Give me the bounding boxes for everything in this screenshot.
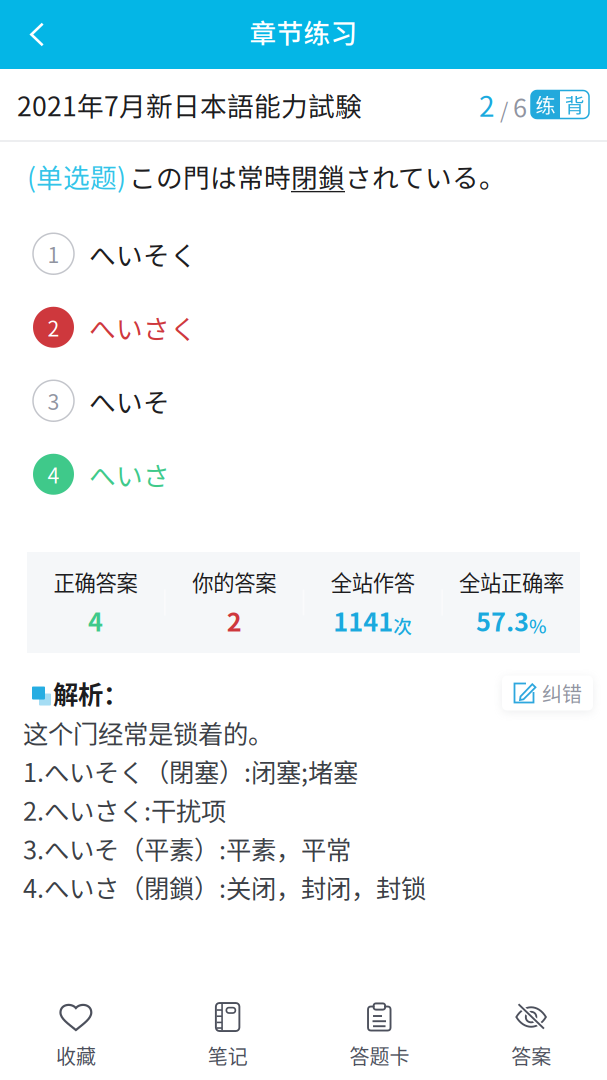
button[interactable]: 2	[0, 290, 607, 364]
staticText: 1.へいそく（閉塞）:闭塞;堵塞	[23, 753, 358, 789]
staticText: 章节练习	[249, 12, 357, 51]
staticText: 收藏	[56, 1041, 96, 1070]
staticText: 答题卡	[349, 1041, 409, 1070]
button[interactable]: 答案	[455, 1000, 607, 1070]
staticText: 2	[479, 84, 495, 125]
staticText: 閉鎖	[291, 157, 345, 195]
staticText: 次	[393, 612, 412, 639]
staticText: 答案	[511, 1041, 551, 1070]
staticText: 2	[227, 602, 242, 639]
staticText: 4.へいさ（閉鎖）:关闭，封闭，封锁	[23, 869, 426, 905]
staticText: 4	[47, 459, 59, 490]
staticText: へいそ	[89, 381, 170, 420]
staticText: 2	[47, 312, 59, 343]
staticText: 解析：	[53, 675, 128, 711]
staticText: 2021年7月新日本語能力試験	[17, 85, 362, 124]
button[interactable]: 笔记	[152, 1000, 304, 1070]
button[interactable]: 4	[0, 437, 607, 511]
staticText: 全站正确率	[459, 566, 564, 597]
staticText: 57.3	[476, 602, 529, 639]
button[interactable]: 背	[560, 90, 589, 118]
staticText: /	[495, 94, 513, 125]
staticText: 这个门经常是锁着的。	[23, 714, 273, 751]
staticText: へいさく	[89, 308, 197, 346]
staticText: へいさ	[89, 455, 170, 493]
staticText: 背	[564, 90, 584, 119]
staticText: 1	[47, 238, 59, 269]
staticText: 1141	[333, 602, 393, 639]
staticText: 3	[47, 385, 59, 416]
button[interactable]: 练	[531, 90, 560, 118]
staticText: されている。	[345, 157, 506, 195]
button[interactable]: 答题卡	[303, 1000, 455, 1070]
button[interactable]: Back	[0, 0, 67, 69]
button[interactable]: 3	[0, 364, 607, 437]
staticText: 练	[535, 90, 555, 119]
staticText: 全站作答	[331, 566, 415, 597]
button[interactable]: 1	[0, 217, 607, 290]
staticText: この門は常時	[129, 157, 291, 195]
staticText: へいそく	[89, 234, 197, 273]
staticText: 笔记	[208, 1041, 248, 1070]
staticText: 3.へいそ（平素）:平素，平常	[23, 830, 351, 867]
staticText: 4	[88, 602, 103, 639]
staticText: 纠错	[542, 678, 582, 707]
staticText: 正确答案	[54, 566, 138, 597]
button[interactable]: 纠错	[502, 675, 593, 710]
staticText: 2.へいさく:干扰项	[23, 791, 226, 828]
staticText: (单选题)	[27, 157, 126, 195]
staticText: %	[529, 612, 547, 639]
staticText: 你的答案	[192, 566, 276, 597]
staticText: 6	[513, 88, 527, 125]
button[interactable]: 收藏	[0, 1000, 152, 1070]
